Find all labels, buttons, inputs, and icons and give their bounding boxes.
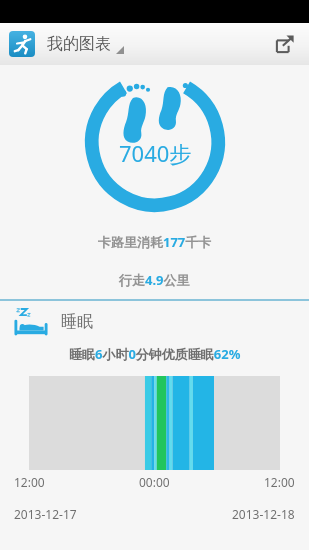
staticText: 卡路里消耗177千卡 bbox=[98, 233, 212, 251]
staticText: 2013-12-18 bbox=[232, 506, 295, 522]
button[interactable]: App icon bbox=[9, 31, 35, 57]
staticText: 睡眠6小时0分钟优质睡眠62% bbox=[69, 345, 241, 363]
button[interactable]: 7040步 bbox=[0, 65, 309, 299]
button[interactable]: 我的图表 bbox=[47, 34, 124, 54]
staticText: 12:00 bbox=[264, 474, 295, 490]
staticText: 行走4.9公里 bbox=[119, 271, 190, 289]
staticText: 00:00 bbox=[139, 474, 170, 490]
staticText: 12:00 bbox=[14, 474, 45, 490]
staticText: 睡眠 bbox=[61, 312, 93, 332]
staticText: 我的图表 bbox=[47, 34, 111, 54]
staticText: 2013-12-17 bbox=[14, 506, 77, 522]
staticText: 7040步 bbox=[119, 138, 192, 168]
button[interactable]: Share bbox=[267, 26, 303, 62]
button[interactable]: 睡眠 bbox=[0, 301, 309, 550]
